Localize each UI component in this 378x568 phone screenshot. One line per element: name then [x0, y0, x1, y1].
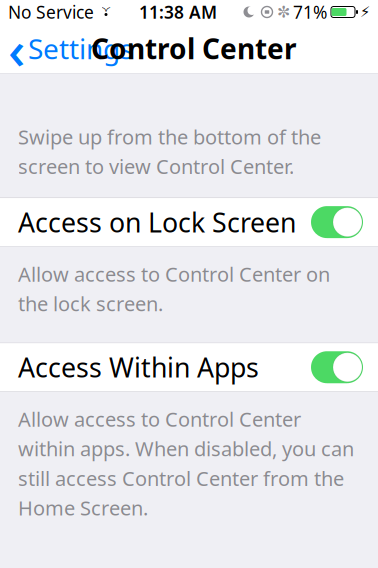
staticText: 11:38 AM: [139, 0, 217, 23]
staticText: Access on Lock Screen: [18, 204, 296, 240]
staticText: ‹: [8, 13, 25, 84]
staticText: Allow access to Control Center on the lo…: [18, 261, 330, 317]
staticText: Allow access to Control Center within ap…: [18, 406, 354, 521]
staticText: Swipe up from the bottom of the screen t…: [18, 123, 321, 180]
staticText: Access Within Apps: [18, 349, 259, 385]
staticText: ⚡︎: [360, 4, 370, 20]
staticText: Control Center: [91, 30, 297, 67]
staticText: 71%: [293, 0, 327, 23]
button[interactable]: ‹: [0, 24, 133, 73]
button[interactable]: Access Within Apps: [0, 343, 378, 391]
staticText: ◝◜: [102, 4, 110, 16]
staticText: ✼: [277, 3, 290, 21]
staticText: No Service: [8, 0, 94, 23]
staticText: Settings: [28, 30, 133, 67]
button[interactable]: Access on Lock Screen: [0, 198, 378, 246]
